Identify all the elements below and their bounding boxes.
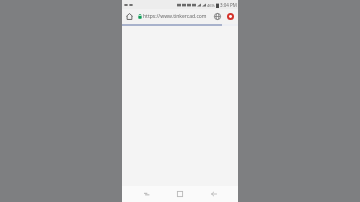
staticText: https://www.tinkercad.com	[143, 13, 207, 20]
button[interactable]: Home	[124, 11, 135, 22]
staticText: 3:04 PM	[220, 2, 237, 8]
button[interactable]: Back	[205, 186, 223, 202]
button[interactable]: Home	[171, 186, 189, 202]
button[interactable]: Menu	[225, 11, 236, 22]
button[interactable]: https://www.tinkercad.com	[136, 11, 211, 22]
button[interactable]: Translate page	[212, 11, 223, 22]
staticText: 46%	[207, 3, 215, 8]
button[interactable]: Recent apps	[138, 186, 156, 202]
